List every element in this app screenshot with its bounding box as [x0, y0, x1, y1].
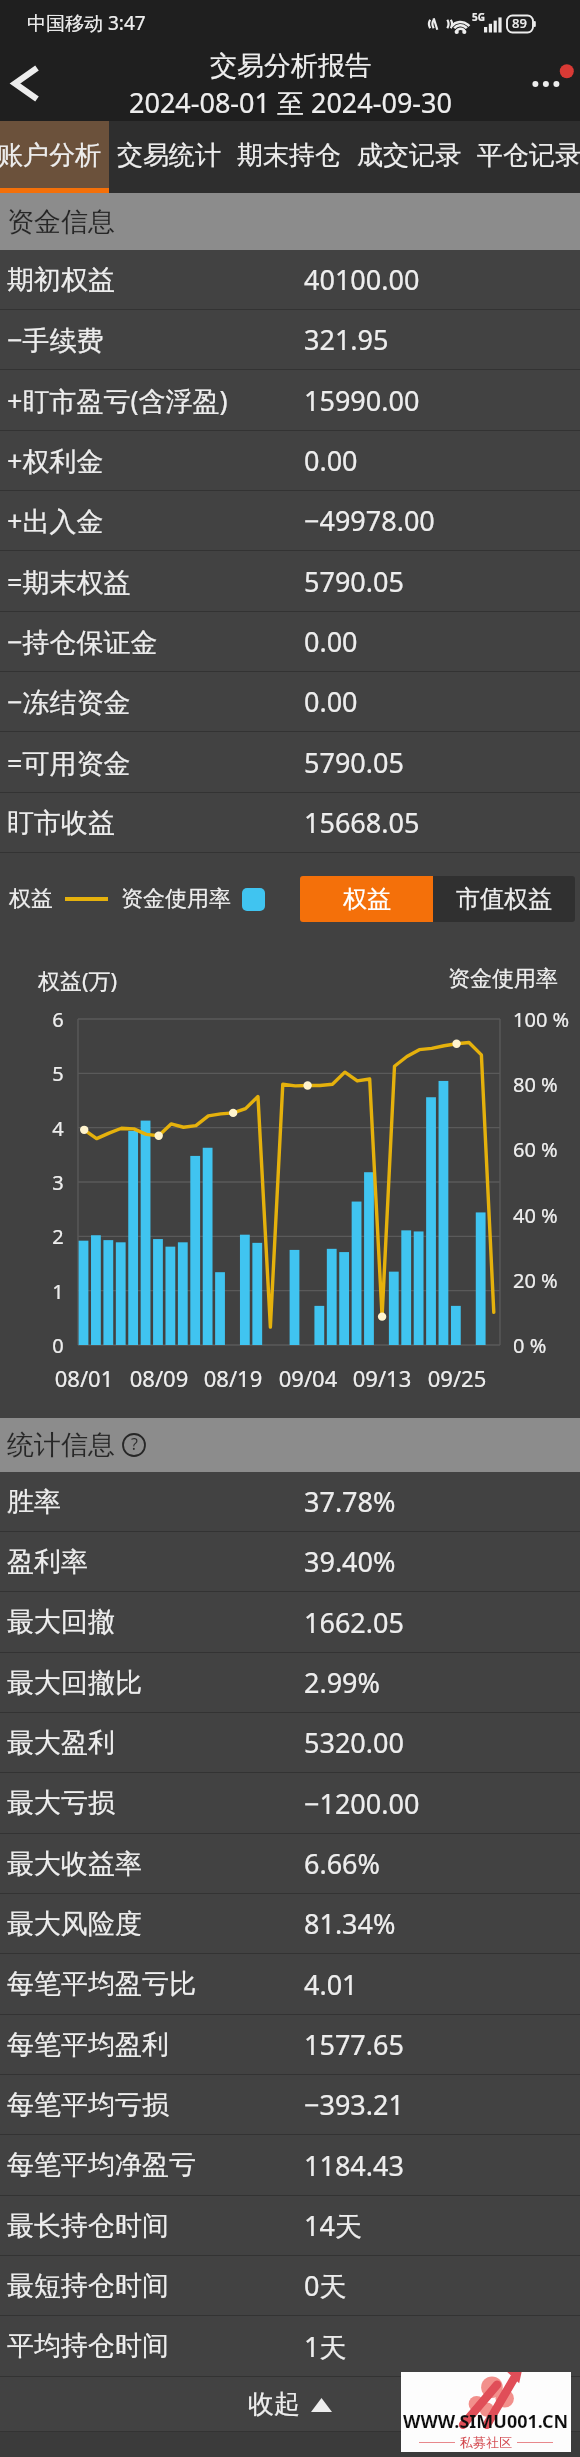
button[interactable]: More options [520, 45, 580, 121]
staticText: −手续费 [7, 321, 304, 358]
staticText: 09/13 [347, 1363, 417, 1393]
staticText: 市值权益 [456, 884, 552, 914]
staticText: 2.99% [304, 1664, 381, 1701]
staticText: 0天 [304, 2267, 347, 2304]
staticText: 胜率 [7, 1485, 304, 1519]
staticText: 100 % [513, 1006, 570, 1033]
staticText: −1200.00 [304, 1785, 420, 1822]
button[interactable]: 权益 [300, 876, 433, 922]
staticText: 2024-08-01 至 2024-09-30 [129, 84, 452, 121]
staticText: 平仓记录 [469, 139, 580, 172]
staticText: 08/19 [198, 1363, 268, 1393]
staticText: 交易分析报告 [210, 49, 372, 83]
button[interactable]: =可用资金 [0, 732, 580, 792]
staticText: 60 % [513, 1136, 558, 1163]
staticText: 资金使用率 [121, 885, 231, 913]
staticText: −冻结资金 [7, 683, 304, 720]
staticText: 成交记录 [349, 139, 469, 172]
staticText: 321.95 [304, 321, 389, 358]
staticText: 最大收益率 [7, 1847, 304, 1881]
staticText: 5790.05 [304, 563, 404, 600]
staticText: 4 [51, 1115, 65, 1142]
staticText: 平均持仓时间 [7, 2329, 304, 2363]
staticText: ? [131, 1433, 138, 1455]
button[interactable]: 最大回撤 [0, 1592, 580, 1652]
button[interactable]: 盈利率 [0, 1532, 580, 1591]
button[interactable]: 账户分析 [0, 121, 109, 193]
staticText: 每笔平均净盈亏 [7, 2148, 304, 2182]
staticText: 0.00 [304, 683, 358, 720]
staticText: 80 % [513, 1071, 558, 1098]
staticText: 交易统计 [109, 139, 229, 172]
button[interactable]: 每笔平均盈利 [0, 2015, 580, 2074]
button[interactable]: 胜率 [0, 1472, 580, 1531]
staticText: 5 [51, 1060, 65, 1087]
staticText: 最大亏损 [7, 1786, 304, 1820]
staticText: 账户分析 [0, 139, 109, 172]
staticText: 中国移动 3:47 [27, 10, 146, 36]
staticText: 资金使用率 [448, 965, 558, 993]
staticText: 15668.05 [304, 804, 420, 841]
staticText: 期末持仓 [229, 139, 349, 172]
staticText: 资金信息 [7, 205, 115, 239]
button[interactable]: 最大收益率 [0, 1834, 580, 1893]
staticText: 盯市收益 [7, 806, 304, 840]
button[interactable]: 交易统计 [109, 121, 229, 193]
button[interactable]: 最大亏损 [0, 1773, 580, 1833]
button[interactable]: −持仓保证金 [0, 612, 580, 671]
staticText: 1577.65 [304, 2026, 404, 2063]
staticText: −393.21 [304, 2086, 404, 2123]
staticText: 20 % [513, 1267, 558, 1294]
button[interactable]: −冻结资金 [0, 672, 580, 731]
staticText: 0.00 [304, 623, 358, 660]
button[interactable]: 每笔平均盈亏比 [0, 1954, 580, 2014]
button[interactable]: =期末权益 [0, 551, 580, 611]
staticText: WWW.SIMU001.CN [403, 2409, 569, 2434]
staticText: 每笔平均盈利 [7, 2028, 304, 2062]
button[interactable]: +盯市盈亏(含浮盈) [0, 370, 580, 430]
button[interactable]: +出入金 [0, 491, 580, 550]
staticText: 统计信息 [7, 1428, 115, 1462]
staticText: =期末权益 [7, 563, 304, 600]
staticText: 收起 [248, 2388, 300, 2421]
staticText: 89 [512, 14, 527, 32]
staticText: 39.40% [304, 1543, 396, 1580]
staticText: 1662.05 [304, 1604, 404, 1641]
staticText: 最短持仓时间 [7, 2269, 304, 2303]
button[interactable]: 成交记录 [349, 121, 469, 193]
button[interactable]: 期末持仓 [229, 121, 349, 193]
staticText: 37.78% [304, 1483, 396, 1520]
staticText: 权益 [9, 885, 53, 913]
staticText: 最大风险度 [7, 1907, 304, 1941]
staticText: −49978.00 [304, 502, 435, 539]
button[interactable]: 最大盈利 [0, 1713, 580, 1772]
button[interactable]: +权利金 [0, 431, 580, 490]
button[interactable]: 收起 [0, 2377, 580, 2431]
button[interactable]: 最大风险度 [0, 1894, 580, 1953]
staticText: +权利金 [7, 442, 304, 479]
button[interactable]: 盯市收益 [0, 793, 580, 852]
staticText: 每笔平均亏损 [7, 2088, 304, 2122]
button[interactable]: 最长持仓时间 [0, 2196, 580, 2255]
staticText: 0 % [513, 1332, 547, 1359]
button[interactable]: 最短持仓时间 [0, 2256, 580, 2315]
staticText: 最大回撤比 [7, 1666, 304, 1700]
staticText: 08/09 [124, 1363, 194, 1393]
staticText: =可用资金 [7, 744, 304, 781]
button[interactable]: 最大回撤比 [0, 1653, 580, 1712]
button[interactable]: 每笔平均净盈亏 [0, 2135, 580, 2195]
staticText: 6 [51, 1006, 65, 1033]
button[interactable]: 平均持仓时间 [0, 2316, 580, 2376]
staticText: 1天 [304, 2328, 347, 2365]
staticText: 权益 [343, 884, 391, 914]
staticText: +出入金 [7, 502, 304, 539]
button[interactable]: 每笔平均亏损 [0, 2075, 580, 2134]
staticText: 权益(万) [38, 965, 118, 995]
button[interactable]: 期初权益 [0, 250, 580, 309]
button[interactable]: 平仓记录 [469, 121, 580, 193]
button[interactable]: 市值权益 [433, 876, 575, 922]
button[interactable]: Back [0, 45, 52, 121]
button[interactable]: −手续费 [0, 310, 580, 369]
staticText: 15990.00 [304, 382, 420, 419]
staticText: 81.34% [304, 1905, 396, 1942]
